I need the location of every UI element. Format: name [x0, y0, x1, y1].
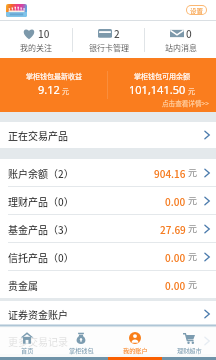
staticText: 0.00	[165, 250, 186, 264]
staticText: 元	[188, 166, 198, 179]
staticText: 账户余额（2）	[8, 166, 74, 180]
staticText: 掌柜钱包可用余额	[134, 71, 190, 81]
button[interactable]: 理财产品（0）	[0, 187, 216, 214]
button[interactable]: 正在交易产品	[0, 122, 216, 148]
staticText: 0	[186, 26, 192, 40]
staticText: 正在交易产品	[8, 128, 68, 142]
staticText: 更多交易记录	[8, 334, 68, 348]
button[interactable]: 更多交易记录	[0, 328, 216, 354]
staticText: 理财产品（0）	[8, 194, 74, 208]
staticText: 9.12	[38, 82, 60, 97]
button[interactable]: 设置	[187, 6, 206, 14]
staticText: 元	[188, 278, 198, 291]
staticText: 证券资金账户	[8, 307, 68, 321]
staticText: 理财超市	[177, 346, 202, 355]
button[interactable]: 首页	[0, 327, 54, 357]
staticText: 元	[188, 194, 198, 207]
staticText: 904.16	[154, 166, 186, 180]
button[interactable]: 证券资金账户	[0, 301, 216, 327]
staticText: 10	[38, 26, 50, 40]
button[interactable]: 基金产品（3）	[0, 215, 216, 242]
staticText: 我的关注	[20, 42, 52, 54]
button[interactable]: 10	[0, 21, 72, 58]
button[interactable]: 0	[145, 21, 216, 58]
staticText: 2	[114, 26, 120, 40]
button[interactable]: 2	[73, 21, 144, 58]
staticText: 我的账户	[123, 346, 148, 355]
staticText: 首页	[21, 346, 34, 355]
button[interactable]: 账户余额（2）	[0, 159, 216, 186]
staticText: 0.00	[165, 278, 186, 292]
staticText: 0.00	[165, 194, 186, 208]
staticText: 点击查看详情>>	[162, 98, 209, 108]
staticText: 贵金属	[8, 278, 38, 292]
button[interactable]: App logo	[6, 4, 27, 17]
staticText: 元	[188, 250, 198, 263]
button[interactable]: 贵金属	[0, 271, 216, 298]
staticText: 设置	[190, 6, 203, 14]
button[interactable]: 理财超市	[162, 327, 216, 357]
staticText: 信托产品（0）	[8, 250, 74, 264]
staticText: 掌柜钱包	[69, 346, 94, 355]
button[interactable]: 掌柜钱包	[54, 327, 108, 357]
staticText: 银行卡管理	[89, 42, 129, 54]
staticText: 站内消息	[165, 42, 197, 54]
button[interactable]: 信托产品（0）	[0, 243, 216, 270]
staticText: 掌柜钱包最新收益	[26, 71, 82, 81]
staticText: 元	[62, 86, 69, 96]
staticText: 元	[188, 222, 198, 235]
button[interactable]: 点击查看详情>>	[162, 98, 209, 108]
button[interactable]: 我的账户	[108, 327, 162, 357]
staticText: 27.69	[160, 222, 186, 236]
staticText: 基金产品（3）	[8, 222, 74, 236]
staticText: 101,141.50	[129, 82, 186, 97]
staticText: 元	[188, 86, 195, 96]
